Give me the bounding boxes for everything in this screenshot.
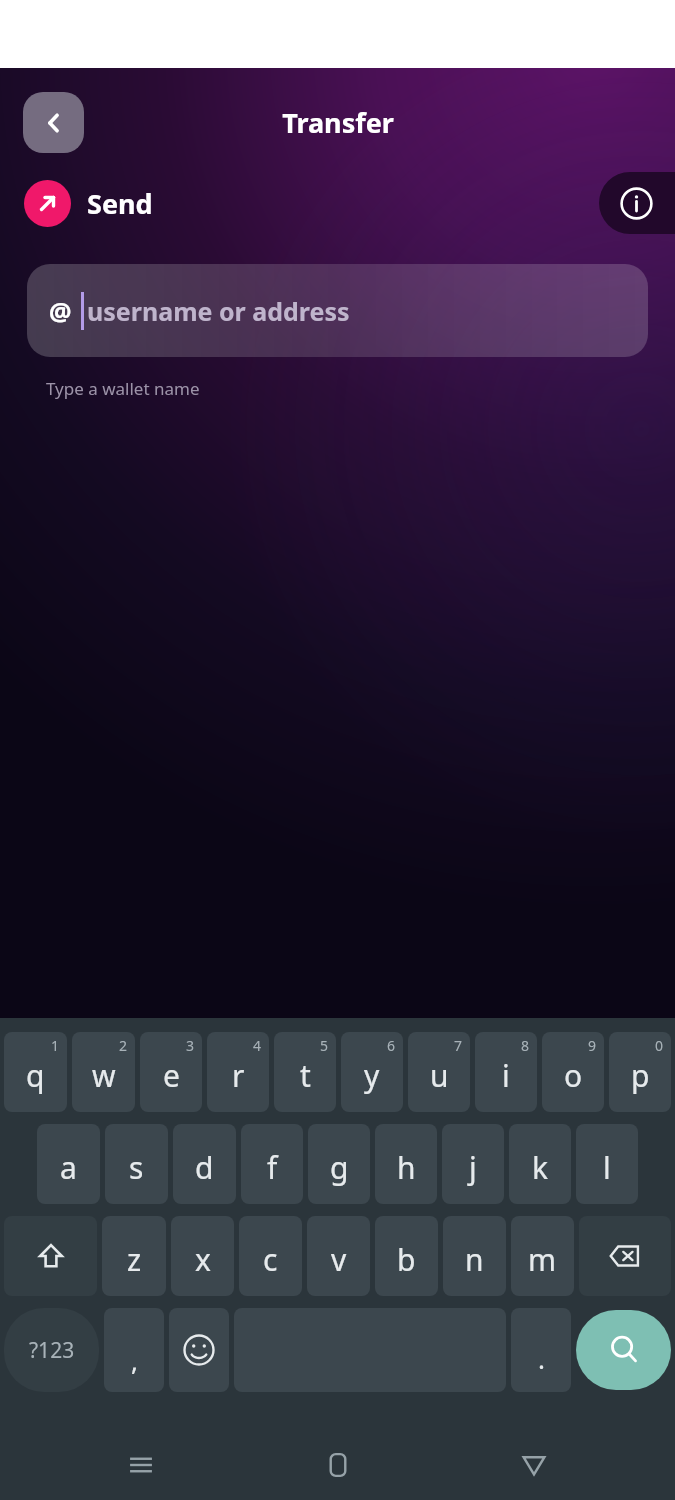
staticText: 5 [320,1036,329,1055]
staticText: x [195,1239,211,1280]
button[interactable]: h [375,1124,437,1204]
button[interactable]: ?123 [4,1308,99,1392]
staticText: 1 [51,1036,60,1055]
staticText: p [631,1055,650,1096]
button[interactable]: Shift [4,1216,97,1296]
staticText: @ [49,294,72,328]
staticText: i [502,1055,510,1096]
button[interactable]: v [307,1216,370,1296]
staticText: , [131,1343,138,1378]
button[interactable]: n [443,1216,506,1296]
staticText: a [60,1147,77,1188]
button[interactable]: m [511,1216,574,1296]
staticText: e [163,1055,180,1096]
staticText: b [397,1239,416,1280]
button[interactable]: Home [315,1442,361,1488]
button[interactable]: g [308,1124,370,1204]
button[interactable]: l [576,1124,638,1204]
staticText: z [127,1239,142,1280]
button[interactable]: Back [511,1442,557,1488]
staticText: 0 [655,1036,664,1055]
staticText: j [469,1147,477,1188]
staticText: l [603,1147,611,1188]
button[interactable]: Recents [118,1442,164,1488]
button[interactable]: b [375,1216,438,1296]
staticText: 4 [253,1036,262,1055]
staticText: u [430,1055,449,1096]
staticText: w [92,1055,116,1096]
staticText: username or address [87,294,350,328]
button[interactable]: Info [599,172,675,234]
staticText: r [232,1055,245,1096]
staticText: v [331,1239,347,1280]
staticText: m [528,1239,557,1280]
staticText: 7 [454,1036,463,1055]
button[interactable]: z [102,1216,166,1296]
staticText: 6 [387,1036,396,1055]
staticText: c [263,1239,278,1280]
button[interactable]: w [72,1032,135,1112]
button[interactable]: j [442,1124,504,1204]
staticText: s [129,1147,144,1188]
button[interactable]: Search [576,1310,671,1390]
staticText: Send [87,185,153,222]
staticText: Type a wallet name [46,377,200,400]
button[interactable]: a [37,1124,100,1204]
staticText: f [267,1147,278,1188]
staticText: d [195,1147,214,1188]
button[interactable]: Emoji [169,1308,229,1392]
button[interactable]: @ [27,264,648,357]
button[interactable]: u [408,1032,470,1112]
staticText: h [397,1147,416,1188]
button[interactable]: o [542,1032,604,1112]
button[interactable]: r [207,1032,269,1112]
staticText: t [300,1055,311,1096]
button[interactable]: p [609,1032,671,1112]
staticText: y [364,1055,380,1096]
button[interactable]: t [274,1032,336,1112]
button[interactable]: k [509,1124,571,1204]
staticText: q [26,1055,45,1096]
button[interactable]: c [239,1216,302,1296]
staticText: n [465,1239,484,1280]
staticText: g [330,1147,349,1188]
button[interactable]: x [171,1216,234,1296]
button[interactable]: d [173,1124,236,1204]
staticText: 2 [119,1036,128,1055]
staticText: k [532,1147,549,1188]
staticText: ?123 [29,1336,75,1365]
button[interactable]: . [511,1308,571,1392]
button[interactable]: s [105,1124,168,1204]
button[interactable]: e [140,1032,202,1112]
button[interactable]: q [4,1032,67,1112]
button[interactable]: Back [23,92,84,153]
staticText: 3 [186,1036,195,1055]
staticText: o [564,1055,583,1096]
staticText: 8 [521,1036,530,1055]
staticText: Transfer [282,104,394,141]
staticText: 9 [588,1036,597,1055]
button[interactable]: Backspace [579,1216,671,1296]
button[interactable]: Send [24,180,153,227]
button[interactable]: f [241,1124,303,1204]
button[interactable]: y [341,1032,403,1112]
button[interactable]: i [475,1032,537,1112]
staticText: . [538,1341,545,1376]
button[interactable]: , [104,1308,164,1392]
